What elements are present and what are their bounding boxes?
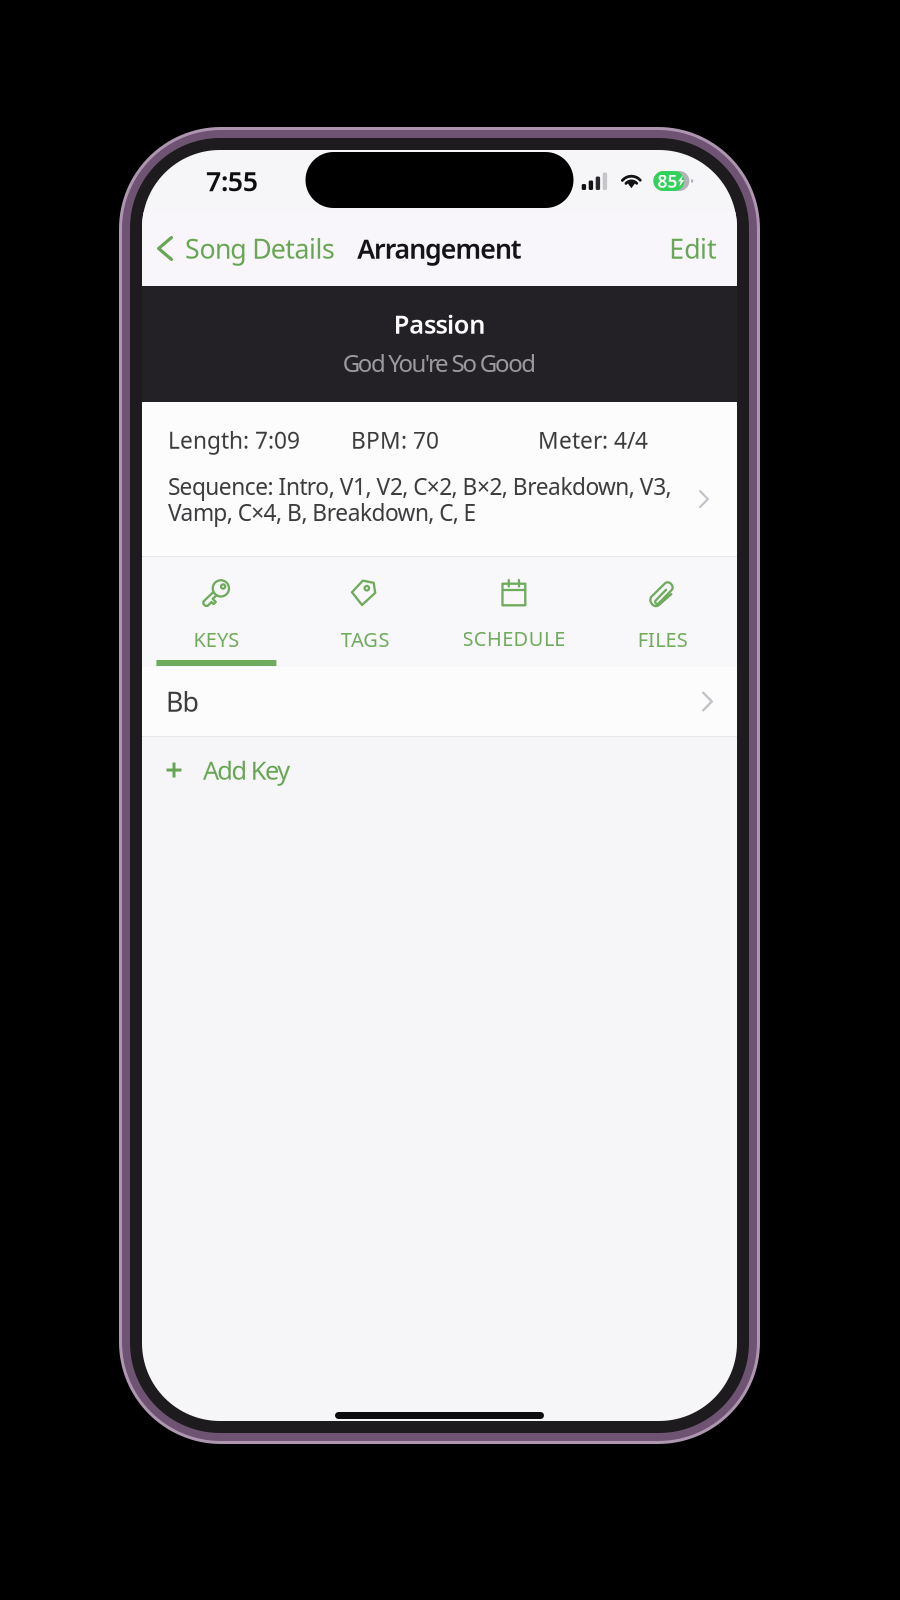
button[interactable]: Edit: [651, 212, 737, 285]
button[interactable]: Length: 7:09: [142, 402, 737, 556]
button[interactable]: SCHEDULE: [439, 557, 588, 667]
staticText: Edit: [669, 231, 717, 266]
staticText: Song Details: [185, 231, 335, 266]
button[interactable]: FILES: [588, 557, 737, 667]
button[interactable]: Song Details: [142, 212, 345, 285]
staticText: God You're So Good: [343, 347, 536, 378]
button[interactable]: TAGS: [291, 557, 440, 667]
staticText: FILES: [638, 626, 688, 653]
staticText: 85: [657, 169, 677, 192]
staticText: Sequence: Intro, V1, V2, C×2, B×2, Break…: [168, 471, 672, 527]
staticText: Bb: [166, 684, 199, 719]
staticText: Passion: [394, 307, 485, 341]
staticText: Meter: 4/4: [538, 425, 648, 455]
staticText: TAGS: [341, 626, 390, 653]
staticText: Length: 7:09: [168, 425, 300, 455]
button[interactable]: KEYS: [142, 557, 291, 667]
staticText: 7:55: [206, 163, 258, 199]
button[interactable]: Bb: [142, 667, 737, 736]
staticText: KEYS: [193, 626, 239, 653]
staticText: BPM: 70: [351, 425, 439, 455]
staticText: Arrangement: [357, 231, 522, 266]
staticText: SCHEDULE: [462, 625, 565, 652]
button[interactable]: Add Key: [142, 737, 737, 803]
staticText: Add Key: [203, 753, 290, 787]
